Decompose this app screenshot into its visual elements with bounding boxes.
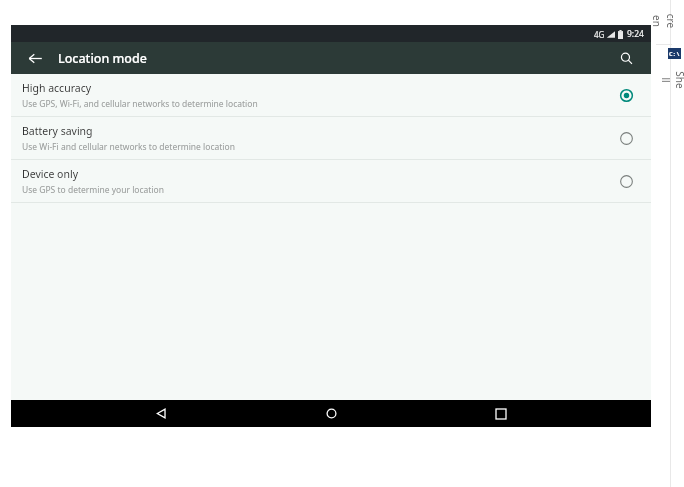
button[interactable]: High accuracy: [11, 74, 651, 116]
staticText: Shell: [659, 71, 684, 89]
button[interactable]: Shell: [668, 48, 681, 59]
staticText: Use Wi-Fi and cellular networks to deter…: [22, 141, 235, 153]
staticText: High accuracy: [22, 81, 92, 95]
staticText: 4G: [594, 29, 605, 40]
staticText: Location mode: [58, 50, 147, 67]
button[interactable]: Shell: [664, 60, 682, 100]
staticText: Device only: [22, 167, 79, 181]
staticText: 9:24: [627, 28, 644, 40]
button[interactable]: Device only: [11, 160, 651, 202]
staticText: creen: [650, 12, 678, 30]
staticText: C:\: [669, 50, 680, 58]
button[interactable]: Home: [311, 400, 351, 427]
button[interactable]: Device only: [613, 168, 639, 194]
staticText: Battery saving: [22, 124, 93, 138]
staticText: Use GPS, Wi-Fi, and cellular networks to…: [22, 98, 258, 110]
button[interactable]: High accuracy: [613, 82, 639, 108]
button[interactable]: Recent apps: [481, 400, 521, 427]
button[interactable]: Back: [141, 400, 181, 427]
staticText: Use GPS to determine your location: [22, 184, 165, 196]
button[interactable]: creen: [655, 0, 673, 42]
button[interactable]: Back: [19, 42, 51, 74]
button[interactable]: Battery saving: [613, 125, 639, 151]
button[interactable]: Battery saving: [11, 117, 651, 159]
button[interactable]: Search: [611, 43, 641, 73]
